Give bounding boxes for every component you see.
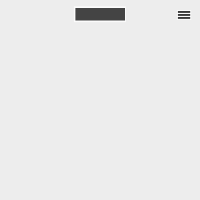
- button[interactable]: Menu: [172, 2, 196, 26]
- button[interactable]: Title: [72, 5, 128, 23]
